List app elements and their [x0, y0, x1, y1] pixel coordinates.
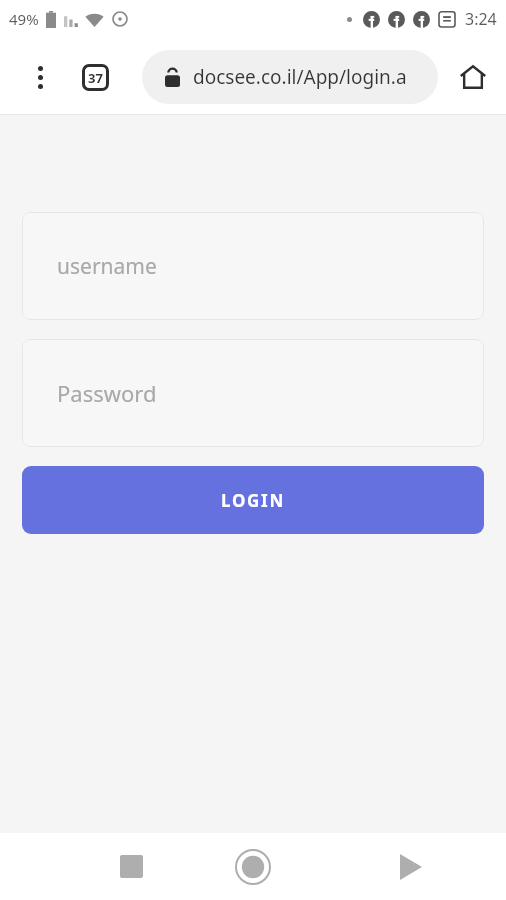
button[interactable]: Back — [0, 833, 190, 900]
staticText: 37 — [88, 69, 103, 87]
button[interactable]: Home — [451, 55, 495, 99]
staticText: docsee.co.il/App/login.a — [193, 64, 407, 90]
staticText: 49% — [9, 9, 39, 29]
button[interactable]: Recent apps — [316, 833, 506, 900]
staticText: username — [57, 252, 157, 281]
button[interactable]: Password — [22, 339, 484, 447]
button[interactable]: More options — [22, 59, 58, 95]
button[interactable]: Home — [190, 833, 316, 900]
staticText: 3:24 — [465, 8, 497, 30]
button[interactable]: Tabs, 37 open — [76, 58, 114, 96]
button[interactable]: username — [22, 212, 484, 320]
staticText: Password — [57, 378, 157, 408]
button[interactable]: docsee.co.il/App/login.a — [142, 50, 438, 104]
staticText: LOGIN — [221, 489, 285, 512]
button[interactable]: LOGIN — [22, 466, 484, 534]
